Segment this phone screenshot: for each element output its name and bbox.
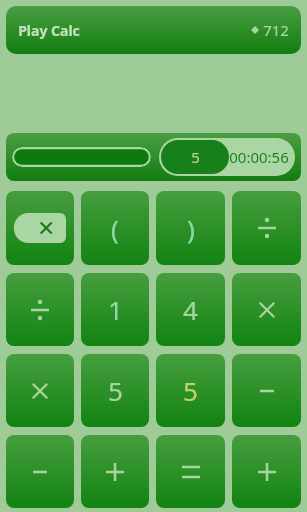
button[interactable]: ( (81, 191, 149, 265)
staticText: ) (187, 211, 195, 246)
button[interactable]: Play Calc (6, 6, 301, 54)
button[interactable]: 1 (81, 273, 149, 346)
staticText: 00:00:56 (229, 147, 289, 167)
staticText: Play Calc (18, 21, 80, 40)
button[interactable]: 5 (156, 354, 225, 427)
button[interactable]: 4 (156, 273, 225, 346)
staticText: 5 (191, 147, 200, 167)
button[interactable]: 5 (81, 354, 149, 427)
button[interactable]: Minus (232, 354, 301, 427)
button[interactable]: 5 (159, 138, 295, 176)
button[interactable]: Multiply (232, 273, 301, 346)
staticText: 712 (263, 20, 289, 40)
staticText: ( (111, 211, 119, 246)
button[interactable]: Divide (232, 191, 301, 265)
button[interactable]: Minus (6, 435, 74, 508)
staticText: 5 (183, 373, 198, 408)
button[interactable]: Divide (6, 273, 74, 346)
button[interactable]: ) (156, 191, 225, 265)
button[interactable]: Multiply (6, 354, 74, 427)
button[interactable] (12, 147, 151, 167)
staticText: 4 (183, 292, 198, 327)
button[interactable]: Backspace (6, 191, 74, 265)
button[interactable]: Equals (156, 435, 225, 508)
staticText: 1 (108, 292, 123, 327)
staticText: 5 (108, 373, 123, 408)
button[interactable]: Plus (232, 435, 301, 508)
button[interactable]: Plus (81, 435, 149, 508)
